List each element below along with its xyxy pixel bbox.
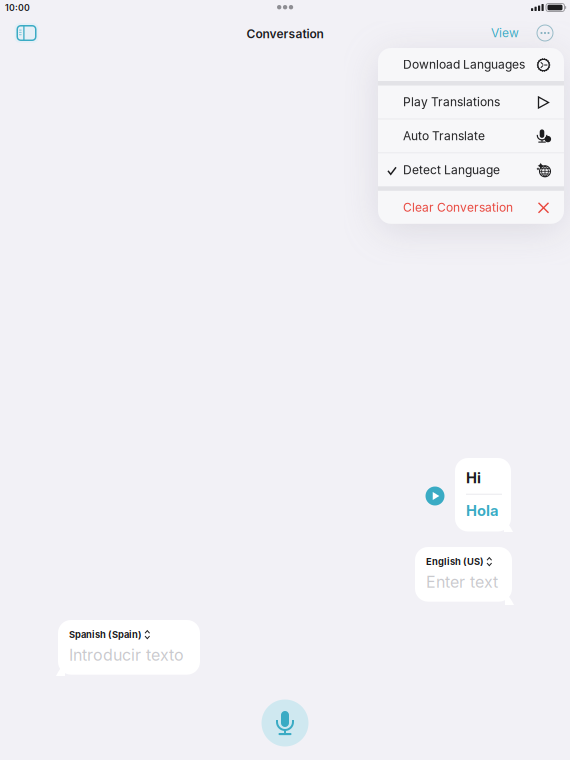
staticText: Auto Translate: [403, 129, 485, 143]
staticText: Introducir texto: [69, 645, 184, 665]
button[interactable]: More: [531, 19, 559, 47]
staticText: Download Languages: [403, 57, 525, 72]
button[interactable]: Detect Language: [378, 153, 564, 186]
staticText: Conversation: [246, 27, 323, 41]
button[interactable]: Record: [255, 693, 315, 753]
staticText: Play Translations: [403, 95, 500, 109]
button[interactable]: Clear Conversation: [378, 191, 564, 224]
staticText: View: [491, 26, 519, 40]
button[interactable]: Show Sidebar: [9, 18, 43, 48]
button[interactable]: Auto Translate: [378, 119, 564, 152]
button[interactable]: Play Translations: [378, 85, 564, 118]
staticText: 10:00: [5, 2, 30, 13]
button[interactable]: View: [485, 19, 525, 47]
button[interactable]: Play translation: [422, 483, 448, 509]
staticText: English (US): [426, 556, 484, 567]
staticText: Spanish (Spain): [69, 629, 142, 640]
staticText: Detect Language: [403, 162, 500, 177]
staticText: Hola: [466, 502, 499, 519]
button[interactable]: Download Languages: [378, 48, 564, 81]
staticText: Clear Conversation: [403, 200, 513, 214]
staticText: Hi: [466, 469, 481, 487]
staticText: Enter text: [426, 572, 498, 592]
